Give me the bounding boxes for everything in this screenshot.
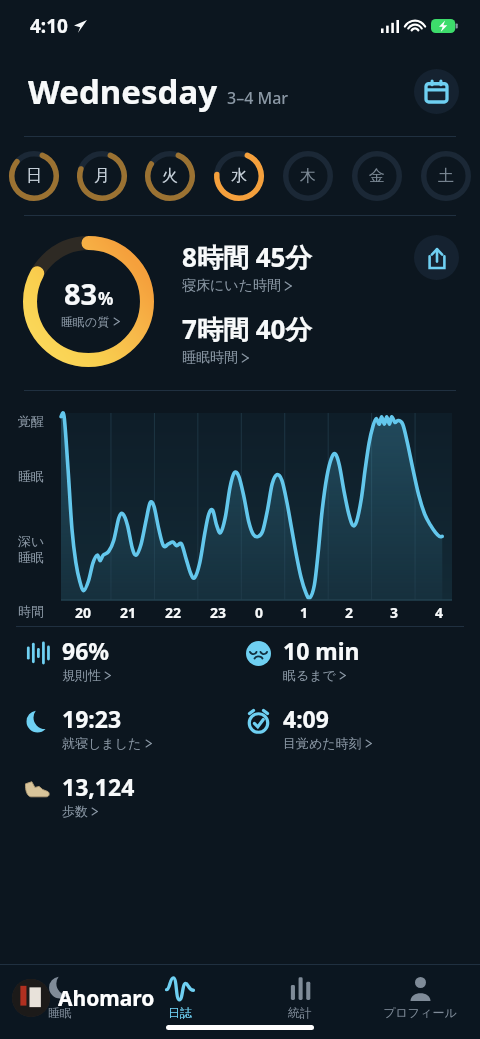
staticText: 睡眠時間 xyxy=(182,349,238,367)
button[interactable]: 火 xyxy=(136,147,204,205)
staticText: 96% xyxy=(62,635,110,666)
button[interactable]: 10 min xyxy=(243,635,464,683)
staticText: % xyxy=(98,287,114,310)
button[interactable]: 7時間 40分 xyxy=(182,311,312,367)
staticText: 4 xyxy=(435,603,444,622)
staticText: 就寝しました xyxy=(62,735,142,751)
staticText: 睡眠の質 xyxy=(61,314,110,329)
button[interactable]: 96% xyxy=(22,635,243,683)
button[interactable]: Calendar xyxy=(414,69,459,114)
staticText: 23 xyxy=(210,603,227,622)
staticText: 2 xyxy=(345,603,354,622)
staticText: 歩数 xyxy=(62,803,88,819)
staticText: 統計 xyxy=(288,1005,312,1020)
staticText: 木 xyxy=(300,166,316,186)
staticText: 日誌 xyxy=(168,1005,192,1020)
staticText: Wednesday xyxy=(28,69,217,114)
staticText: 7時間 40分 xyxy=(182,311,312,347)
button[interactable]: 統計 xyxy=(240,965,360,1020)
staticText: Ahomaro xyxy=(58,984,155,1013)
button[interactable]: 19:23 xyxy=(22,703,243,751)
staticText: 睡眠 xyxy=(48,1005,72,1020)
button[interactable]: 13,124 xyxy=(22,771,243,819)
staticText: プロフィール xyxy=(383,1005,457,1020)
button[interactable]: 水 xyxy=(204,147,273,205)
staticText: 10 min xyxy=(283,635,360,666)
button[interactable]: プロフィール xyxy=(360,965,480,1020)
staticText: 13,124 xyxy=(62,771,135,802)
button[interactable]: 4:09 xyxy=(243,703,464,751)
staticText: 土 xyxy=(438,166,454,186)
staticText: 3 xyxy=(390,603,399,622)
staticText: 0 xyxy=(255,603,264,622)
staticText: 規則性 xyxy=(62,667,101,683)
staticText: 3–4 Mar xyxy=(227,87,289,109)
staticText: 水 xyxy=(231,166,247,186)
button[interactable]: 月 xyxy=(68,147,136,205)
staticText: 19:23 xyxy=(62,703,122,734)
staticText: 1 xyxy=(300,603,309,622)
staticText: 21 xyxy=(120,603,137,622)
staticText: 22 xyxy=(165,603,182,622)
button[interactable]: 83 xyxy=(23,236,154,367)
button[interactable]: Share xyxy=(414,235,459,280)
staticText: 月 xyxy=(94,166,110,186)
staticText: 時間 xyxy=(18,603,44,619)
button[interactable]: 金 xyxy=(342,147,411,205)
staticText: 寝床にいた時間 xyxy=(182,277,281,295)
button[interactable]: 日誌 xyxy=(120,965,240,1020)
staticText: 眠るまで xyxy=(283,667,336,683)
staticText: 4:10 xyxy=(30,13,68,39)
staticText: 睡眠 xyxy=(18,468,44,484)
button[interactable]: 睡眠 xyxy=(0,965,120,1020)
staticText: 目覚めた時刻 xyxy=(283,735,362,751)
staticText: 83 xyxy=(64,274,98,313)
staticText: 8時間 45分 xyxy=(182,239,312,275)
staticText: 火 xyxy=(162,166,178,186)
staticText: 深い 睡眠 xyxy=(18,533,45,566)
staticText: 覚醒 xyxy=(18,413,44,429)
button[interactable]: 8時間 45分 xyxy=(182,239,312,295)
button[interactable] xyxy=(0,391,480,626)
staticText: 日 xyxy=(26,166,42,186)
button[interactable]: 木 xyxy=(273,147,342,205)
button[interactable]: 土 xyxy=(411,147,480,205)
button[interactable]: 日 xyxy=(0,147,68,205)
staticText: 20 xyxy=(75,603,92,622)
staticText: 4:09 xyxy=(283,703,329,734)
staticText: 金 xyxy=(369,166,385,186)
